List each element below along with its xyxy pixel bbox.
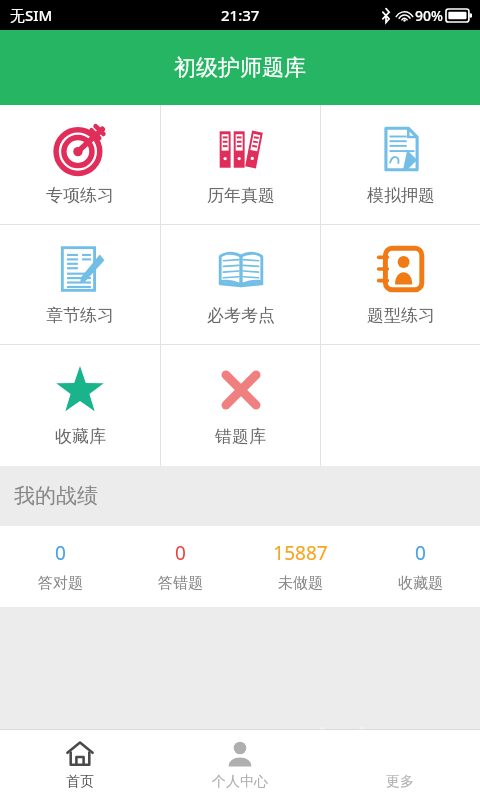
button[interactable]: 历年真题 xyxy=(161,105,320,224)
staticText: 个人中心 xyxy=(212,773,268,791)
button[interactable]: 0 xyxy=(0,526,120,607)
staticText: 错题库 xyxy=(215,426,266,447)
staticText: 0 xyxy=(55,540,66,566)
staticText: 模拟押题 xyxy=(367,185,435,206)
staticText: 章节练习 xyxy=(46,305,114,326)
staticText: 更多 xyxy=(386,773,414,791)
staticText: 未做题 xyxy=(278,574,323,593)
staticText: 21:37 xyxy=(221,5,260,25)
staticText: 15887 xyxy=(273,540,328,566)
staticText: 0 xyxy=(175,540,186,566)
staticText: 我的战绩 xyxy=(14,483,98,509)
other: 首页 xyxy=(65,739,95,769)
button[interactable]: 0 xyxy=(120,526,240,607)
button[interactable]: 0 xyxy=(360,526,480,607)
staticText: 收藏库 xyxy=(55,426,106,447)
button[interactable]: 模拟押题 xyxy=(321,105,480,224)
staticText: 必考考点 xyxy=(207,305,275,326)
button[interactable]: 收藏库 xyxy=(0,345,160,466)
button[interactable]: 题型练习 xyxy=(321,225,480,344)
staticText: 收藏题 xyxy=(398,574,443,593)
staticText: 答错题 xyxy=(158,574,203,593)
button[interactable]: 必考考点 xyxy=(161,225,320,344)
staticText: 90% xyxy=(415,6,443,25)
staticText: 答对题 xyxy=(38,574,83,593)
button[interactable]: 个人中心 xyxy=(160,730,320,800)
button[interactable]: 首页 xyxy=(0,730,160,800)
button[interactable]: 章节练习 xyxy=(0,225,160,344)
staticText: 历年真题 xyxy=(207,185,275,206)
staticText: 初级护师题库 xyxy=(174,54,306,82)
staticText: 专项练习 xyxy=(46,185,114,206)
staticText: 无SIM xyxy=(10,5,53,25)
button[interactable]: 专项练习 xyxy=(0,105,160,224)
staticText: 题型练习 xyxy=(367,305,435,326)
staticText: 0 xyxy=(415,540,426,566)
button[interactable]: 15887 xyxy=(240,526,360,607)
staticText: 首页 xyxy=(66,773,94,791)
other: 个人中心 xyxy=(225,739,255,769)
button[interactable]: 错题库 xyxy=(161,345,320,466)
button[interactable]: 更多 xyxy=(320,730,480,800)
